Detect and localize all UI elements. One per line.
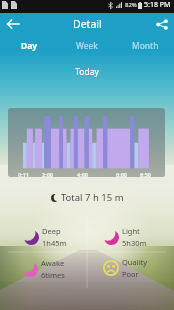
staticText: Total 7 h 15 m xyxy=(61,191,124,204)
staticText: Month xyxy=(132,40,159,52)
button[interactable]: Back xyxy=(0,13,26,35)
button[interactable]: Awake xyxy=(20,257,92,281)
staticText: Today xyxy=(0,66,174,78)
button[interactable]: Deep xyxy=(21,225,93,249)
staticText: Day xyxy=(21,40,38,52)
button[interactable]: Light xyxy=(101,225,173,249)
staticText: 1h45m xyxy=(42,238,67,248)
staticText: Poor xyxy=(122,269,139,279)
staticText: 8:56 xyxy=(140,171,151,177)
button[interactable]: Day xyxy=(0,37,58,55)
staticText: 5:18 PM xyxy=(144,0,171,10)
button[interactable]: Month xyxy=(116,37,174,55)
staticText: 0:11 xyxy=(18,171,29,177)
staticText: Deep xyxy=(42,226,61,236)
staticText: 6:00 xyxy=(116,171,127,177)
staticText: Quality xyxy=(122,257,148,267)
staticText: 2:00 xyxy=(42,171,53,177)
staticText: 5h30m xyxy=(122,238,147,248)
staticText: 6times xyxy=(41,270,65,280)
staticText: Light xyxy=(122,226,140,236)
staticText: Awake xyxy=(41,258,65,268)
button[interactable]: Week xyxy=(58,37,116,55)
staticText: Week xyxy=(76,40,98,52)
button[interactable]: Quality xyxy=(101,256,173,280)
staticText: 4:00 xyxy=(77,171,88,177)
staticText: 82% xyxy=(125,1,137,9)
staticText: Detail xyxy=(73,17,102,31)
button[interactable]: Share xyxy=(150,13,174,35)
